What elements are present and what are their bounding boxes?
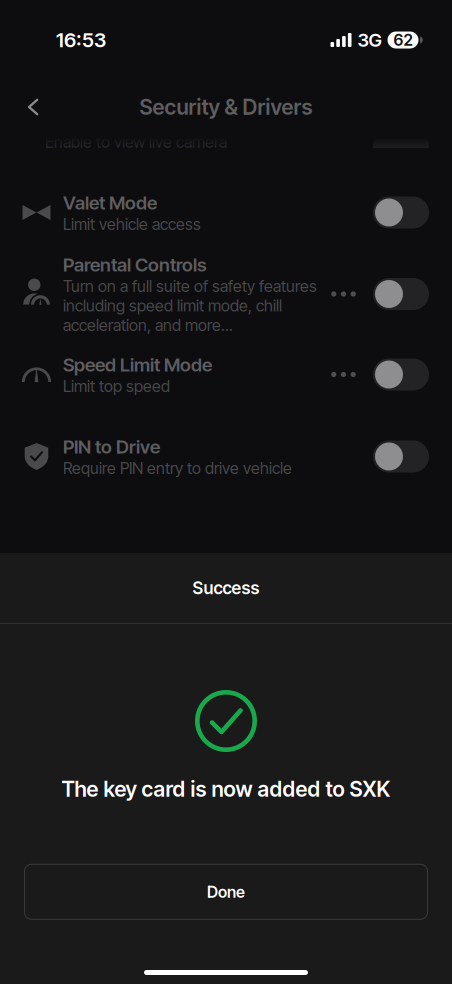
- staticText: acceleration, and more...: [63, 316, 233, 335]
- staticText: Limit top speed: [63, 377, 170, 396]
- staticText: 3G: [357, 29, 381, 51]
- button[interactable]: Done: [24, 864, 428, 920]
- staticText: Turn on a full suite of safety features: [63, 277, 317, 296]
- staticText: 62: [393, 30, 412, 50]
- staticText: Valet Mode: [63, 191, 157, 214]
- button[interactable]: Back: [11, 85, 55, 129]
- button[interactable]: Parental Controls: [0, 253, 452, 335]
- staticText: Success: [192, 577, 259, 598]
- staticText: 16:53: [56, 28, 106, 52]
- staticText: Parental Controls: [63, 253, 207, 276]
- staticText: Security & Drivers: [139, 94, 312, 120]
- staticText: Limit vehicle access: [63, 215, 201, 234]
- staticText: The key card is now added to SXK: [61, 776, 390, 802]
- button[interactable]: Speed Limit Mode: [0, 353, 452, 396]
- staticText: Enable to view live camera: [45, 132, 227, 152]
- staticText: Speed Limit Mode: [63, 353, 212, 376]
- staticText: Require PIN entry to drive vehicle: [63, 459, 292, 478]
- button[interactable]: PIN to Drive: [0, 435, 452, 478]
- staticText: including speed limit mode, chill: [63, 296, 282, 315]
- staticText: Done: [207, 882, 245, 901]
- staticText: PIN to Drive: [63, 435, 160, 458]
- button[interactable]: Valet Mode: [0, 191, 452, 234]
